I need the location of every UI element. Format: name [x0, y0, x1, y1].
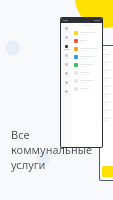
button[interactable]: Раздел меню — [61, 43, 72, 52]
button[interactable] — [74, 29, 101, 37]
button[interactable]: Раздел меню — [61, 52, 72, 61]
button[interactable] — [74, 85, 101, 93]
button[interactable]: Раздел меню — [61, 88, 72, 97]
button[interactable] — [74, 77, 101, 85]
button[interactable] — [74, 53, 101, 61]
button[interactable]: Раздел меню — [61, 61, 72, 70]
staticText: Все — [11, 127, 30, 142]
button[interactable]: Приложение коммунальных услуг — [60, 17, 103, 148]
button[interactable]: Раздел меню — [61, 70, 72, 79]
button[interactable]: Раздел меню — [61, 79, 72, 88]
staticText: коммунальные — [11, 142, 93, 157]
button[interactable]: Оплатить — [102, 166, 113, 177]
staticText: услуги — [11, 157, 46, 172]
button[interactable]: Раздел меню — [61, 25, 72, 34]
button[interactable]: Раздел меню — [61, 34, 72, 43]
button[interactable]: Второй экран приложения — [99, 45, 113, 181]
button[interactable] — [74, 37, 101, 45]
button[interactable] — [74, 61, 101, 69]
button[interactable] — [74, 45, 101, 53]
button[interactable] — [74, 69, 101, 77]
